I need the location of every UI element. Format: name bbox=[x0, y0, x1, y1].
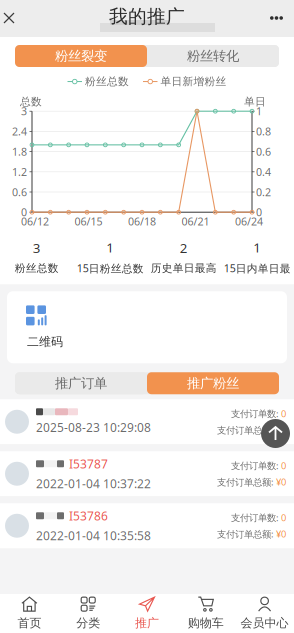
button[interactable]: 回到顶部 bbox=[261, 419, 290, 448]
staticText: 3 bbox=[21, 104, 27, 118]
staticText: 3 bbox=[33, 239, 41, 257]
button[interactable]: 购物车 bbox=[176, 597, 235, 630]
staticText: I53787 bbox=[69, 456, 108, 472]
staticText: 0.4 bbox=[256, 165, 271, 179]
staticText: 推广订单 bbox=[55, 375, 107, 391]
staticText: 粉丝转化 bbox=[187, 48, 239, 64]
staticText: 06/24 bbox=[235, 214, 263, 228]
staticText: 1 bbox=[256, 104, 262, 118]
button[interactable]: 粉丝转化 bbox=[147, 45, 279, 67]
staticText: 2025-08-23 10:29:08 bbox=[36, 419, 151, 435]
staticText: 总数 bbox=[20, 95, 42, 108]
staticText: 15日内单日最 bbox=[224, 261, 291, 275]
staticText: 历史单日最高 bbox=[151, 262, 217, 275]
button[interactable]: 粉丝裂变 bbox=[15, 45, 147, 67]
staticText: 15日粉丝总数 bbox=[77, 261, 144, 275]
staticText: 粉丝总数 bbox=[15, 262, 59, 275]
button[interactable]: I53786 bbox=[0, 503, 294, 548]
staticText: 06/15 bbox=[74, 214, 102, 228]
staticText: 0.6 bbox=[256, 144, 271, 159]
staticText: 0 bbox=[21, 205, 27, 219]
staticText: 粉丝裂变 bbox=[55, 48, 107, 64]
staticText: 推广 bbox=[135, 616, 159, 630]
button[interactable]: 会员中心 bbox=[235, 597, 294, 630]
staticText: 推广粉丝 bbox=[187, 375, 239, 391]
button[interactable]: 2025-08-23 10:29:08 bbox=[0, 399, 294, 444]
staticText: 0.6 bbox=[12, 185, 27, 199]
staticText: 0 bbox=[281, 511, 286, 524]
button[interactable]: 推广 bbox=[118, 597, 176, 630]
staticText: 0 bbox=[281, 407, 286, 420]
staticText: 1.2 bbox=[12, 165, 27, 179]
staticText: 2022-01-04 10:37:22 bbox=[36, 476, 151, 492]
staticText: 0 bbox=[256, 205, 262, 219]
staticText: 分类 bbox=[76, 616, 100, 630]
button[interactable]: 二维码 bbox=[7, 291, 287, 363]
staticText: 单日新增粉丝 bbox=[160, 75, 226, 88]
staticText: 支付订单总额: bbox=[217, 528, 276, 540]
staticText: 1.8 bbox=[12, 144, 27, 159]
staticText: 0.2 bbox=[256, 185, 271, 199]
staticText: 2 bbox=[180, 239, 188, 257]
staticText: 1 bbox=[106, 238, 114, 256]
staticText: 支付订单数: bbox=[231, 511, 281, 524]
staticText: ¥0 bbox=[276, 476, 286, 488]
button[interactable]: I53787 bbox=[0, 451, 294, 496]
staticText: 06/12 bbox=[21, 214, 49, 228]
staticText: 会员中心 bbox=[241, 616, 289, 630]
button[interactable]: 分类 bbox=[59, 597, 118, 630]
staticText: 二维码 bbox=[27, 334, 63, 349]
staticText: 支付订单数: bbox=[231, 407, 281, 420]
staticText: 0 bbox=[281, 459, 286, 472]
staticText: 购物车 bbox=[188, 616, 224, 630]
button[interactable]: 推广粉丝 bbox=[147, 372, 279, 394]
button[interactable]: 更多 bbox=[258, 0, 294, 37]
staticText: ¥0 bbox=[276, 528, 286, 540]
button[interactable]: 关闭 bbox=[0, 0, 26, 37]
staticText: I53786 bbox=[69, 508, 108, 524]
staticText: 粉丝总数 bbox=[85, 75, 129, 88]
staticText: 06/21 bbox=[181, 214, 209, 228]
staticText: 支付订单数: bbox=[231, 459, 281, 472]
staticText: 0.8 bbox=[256, 124, 271, 138]
staticText: 2022-01-04 10:35:58 bbox=[36, 528, 151, 544]
button[interactable]: 首页 bbox=[0, 597, 59, 630]
staticText: 首页 bbox=[17, 616, 41, 630]
staticText: 单日 bbox=[244, 95, 266, 108]
staticText: ¥0 bbox=[276, 424, 286, 436]
button[interactable]: 推广订单 bbox=[15, 372, 147, 394]
staticText: 我的推广 bbox=[109, 5, 185, 28]
staticText: 1 bbox=[253, 238, 261, 256]
staticText: 06/18 bbox=[128, 214, 156, 228]
staticText: 支付订单总额: bbox=[217, 476, 276, 488]
staticText: 2.4 bbox=[12, 124, 27, 138]
staticText: 支付订单总额: bbox=[217, 424, 276, 436]
